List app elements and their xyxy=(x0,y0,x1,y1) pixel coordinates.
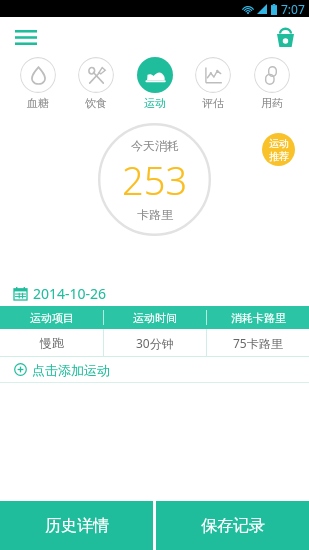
button[interactable]: 保存记录 xyxy=(156,501,309,550)
staticText: 用药 xyxy=(261,96,283,110)
button[interactable]: Basket xyxy=(269,21,301,53)
staticText: 推荐 xyxy=(269,150,289,163)
staticText: 饮食 xyxy=(85,96,107,110)
staticText: 7:07 xyxy=(281,1,305,17)
staticText: 评估 xyxy=(202,96,224,110)
button[interactable]: 饮食 xyxy=(69,57,123,110)
button[interactable]: 慢跑 xyxy=(0,329,309,356)
staticText: 今天消耗 xyxy=(131,138,179,153)
staticText: 253 xyxy=(122,154,188,206)
staticText: 慢跑 xyxy=(40,335,64,350)
staticText: 2014-10-26 xyxy=(33,284,107,303)
button[interactable]: 运动 xyxy=(128,57,182,110)
button[interactable]: 评估 xyxy=(186,57,240,110)
staticText: 点击添加运动 xyxy=(32,362,110,378)
button[interactable]: Menu xyxy=(8,19,44,55)
button[interactable]: 运动 xyxy=(262,133,295,166)
button[interactable]: 历史详情 xyxy=(0,501,153,550)
staticText: 卡路里 xyxy=(137,207,173,222)
staticText: 血糖 xyxy=(27,96,49,110)
staticText: 运动 xyxy=(144,96,166,110)
staticText: 运动时间 xyxy=(133,311,177,325)
button[interactable]: 点击添加运动 xyxy=(14,357,309,382)
staticText: 保存记录 xyxy=(201,516,265,536)
button[interactable]: 血糖 xyxy=(11,57,65,110)
staticText: 运动 xyxy=(269,137,289,150)
staticText: 运动项目 xyxy=(30,311,74,325)
button[interactable]: 今天消耗 xyxy=(98,123,211,236)
button[interactable]: 用药 xyxy=(245,57,299,110)
staticText: 历史详情 xyxy=(45,516,109,536)
staticText: 75卡路里 xyxy=(233,335,283,351)
staticText: 30分钟 xyxy=(136,335,174,351)
staticText: 消耗卡路里 xyxy=(231,311,286,325)
button[interactable]: 2014-10-26 xyxy=(14,280,309,306)
